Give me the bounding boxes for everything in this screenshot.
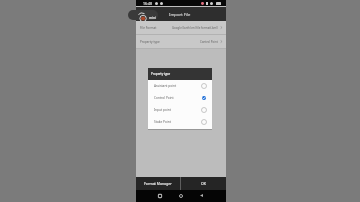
button[interactable]: Format Manager — [136, 177, 180, 190]
button[interactable]: OK — [181, 177, 226, 190]
staticText: OK — [201, 181, 207, 186]
staticText: 16:48 — [143, 1, 152, 6]
staticText: Property type — [140, 40, 160, 44]
staticText: Google Earth kml file format(.kml) — [172, 26, 218, 30]
staticText: Import File — [169, 12, 191, 18]
button[interactable]: Back — [194, 191, 209, 200]
staticText: Control Point — [154, 96, 174, 100]
staticText: Format Manager — [144, 181, 172, 186]
staticText: Control Point — [200, 40, 218, 44]
button[interactable]: File Format — [136, 21, 226, 34]
staticText: Input point — [154, 108, 171, 112]
button[interactable]: Home — [173, 191, 188, 200]
button[interactable]: Assistant point — [148, 80, 212, 92]
button[interactable]: Recents — [152, 191, 167, 200]
staticText: Stake Point — [154, 120, 171, 124]
staticText: Assistant point — [154, 84, 177, 88]
staticText: File Format — [140, 26, 157, 30]
staticText: Property type — [151, 72, 171, 76]
button[interactable]: Stake Point — [148, 116, 212, 128]
button[interactable]: Property type — [136, 35, 226, 48]
staticText: mini — [149, 16, 157, 20]
button[interactable]: Control Point — [148, 92, 212, 104]
button[interactable]: Input point — [148, 104, 212, 116]
